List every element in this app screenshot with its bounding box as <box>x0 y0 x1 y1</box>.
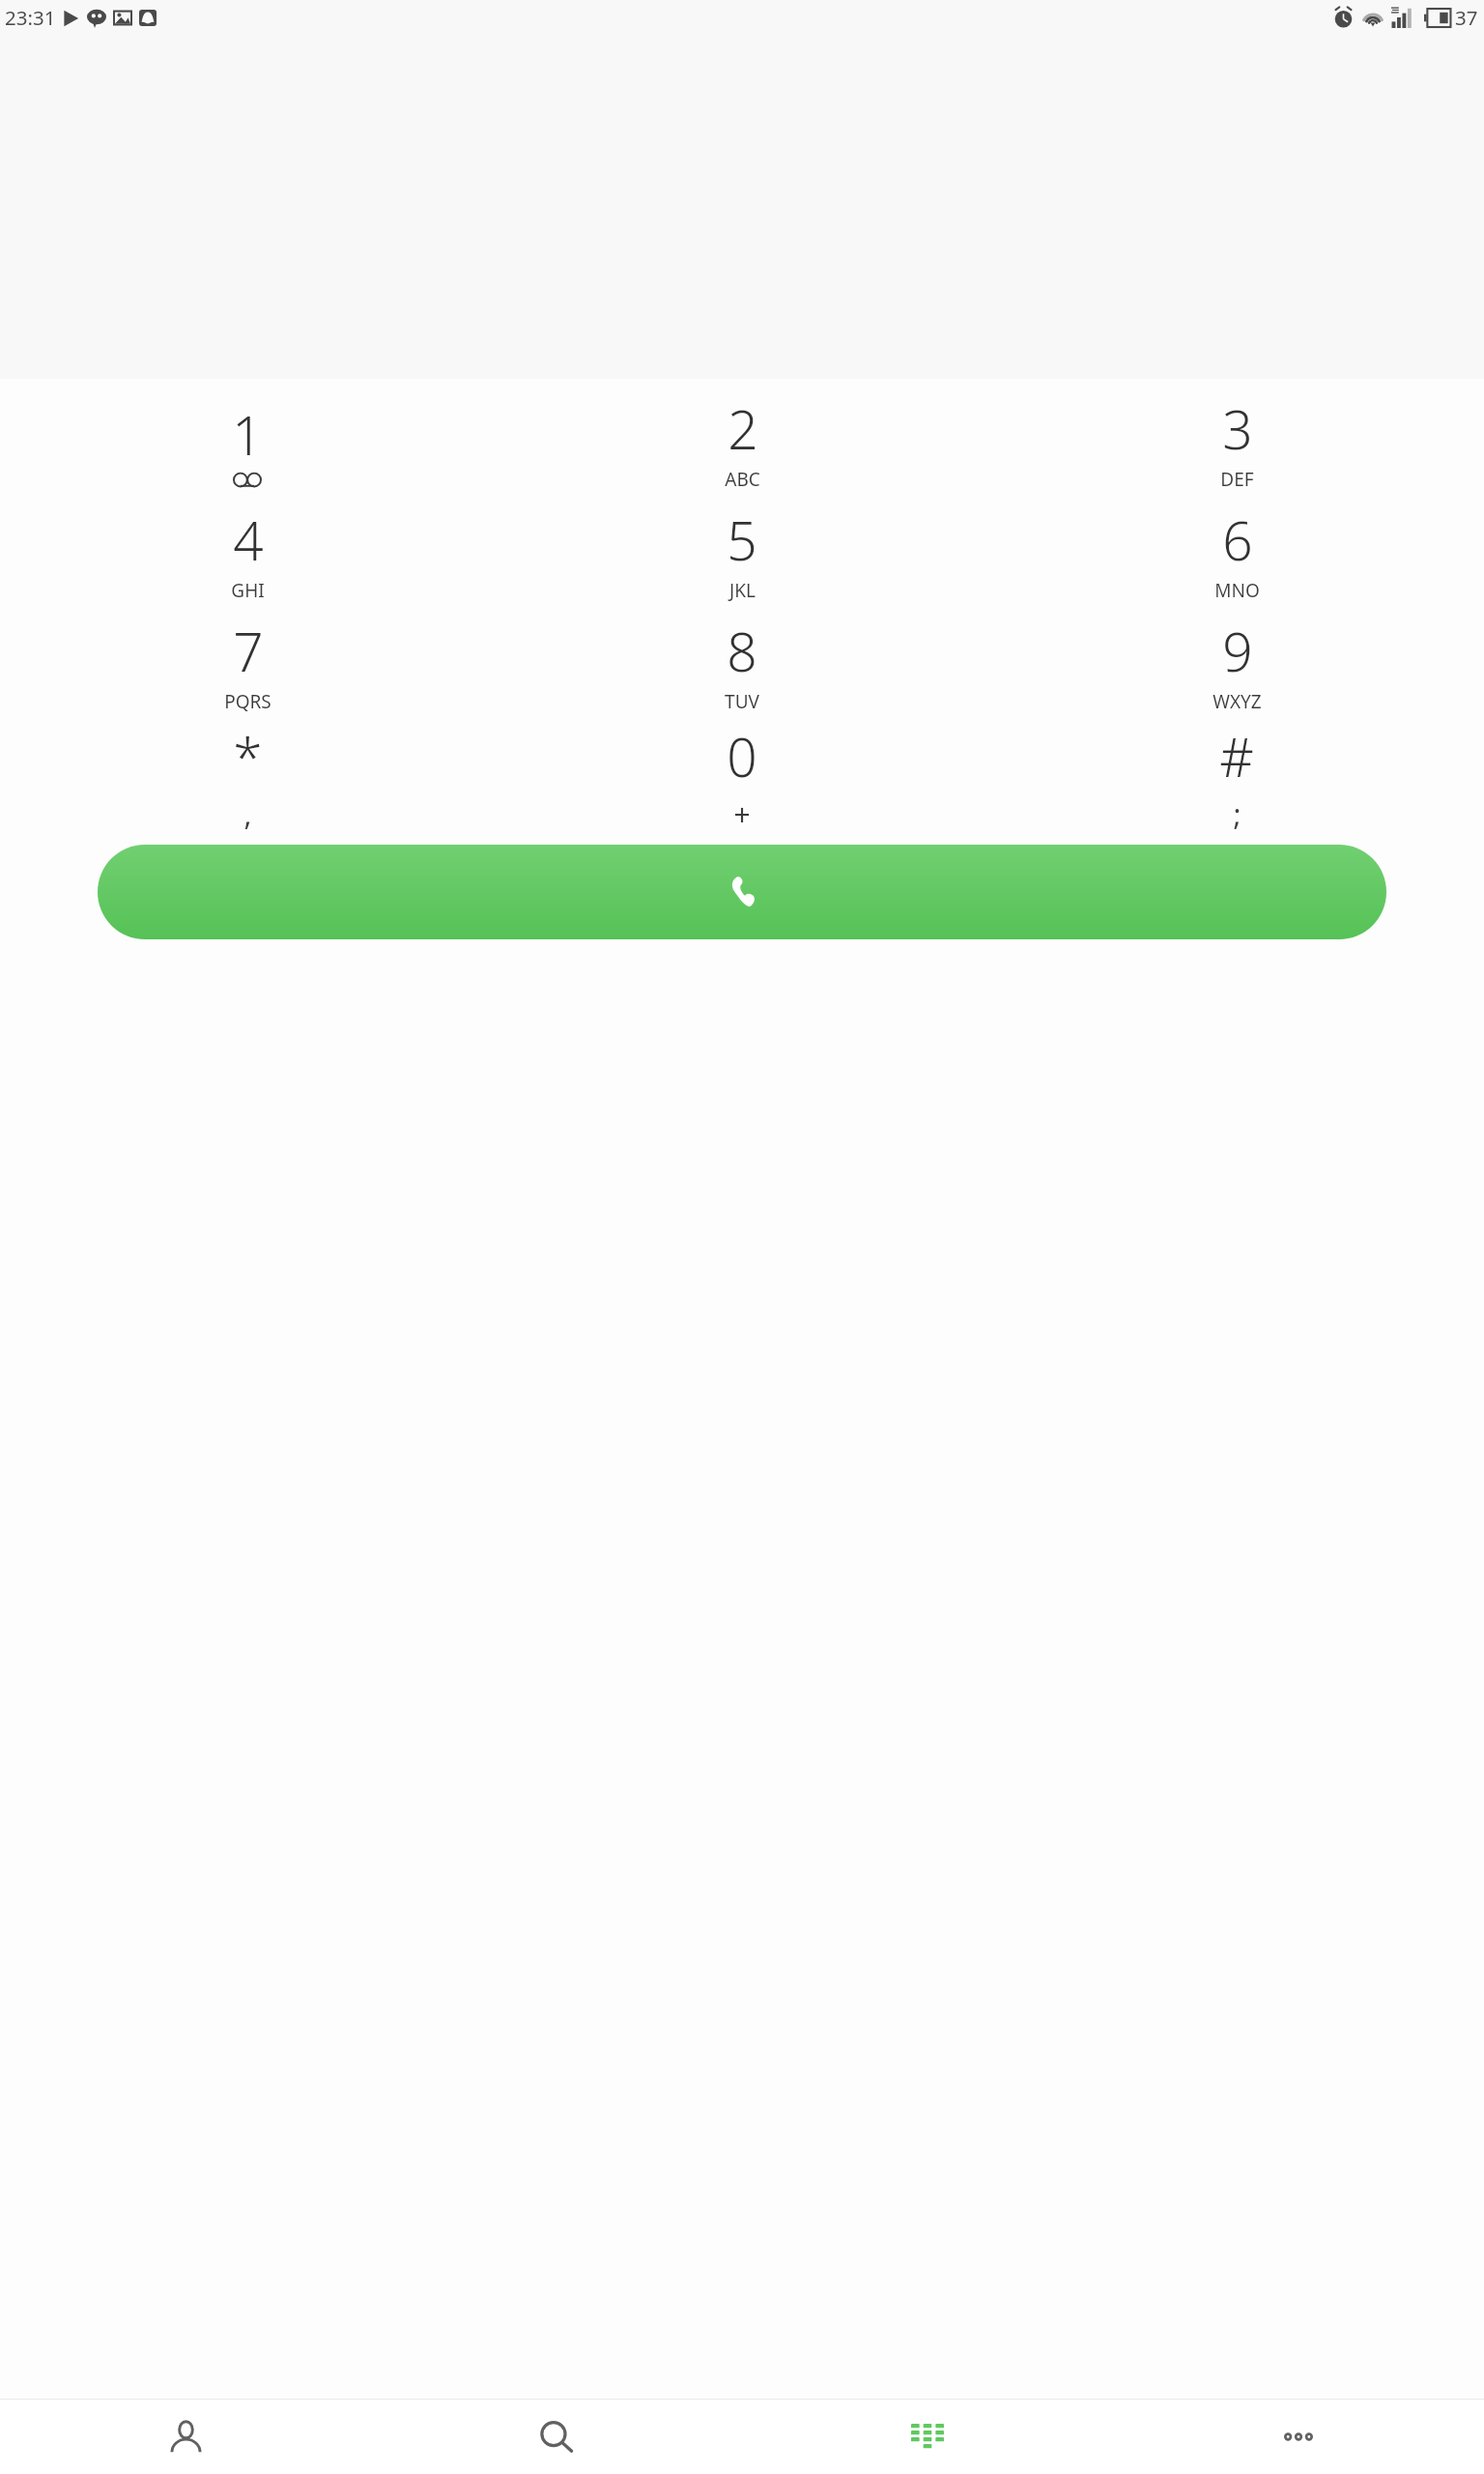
staticText: 8 <box>727 615 757 687</box>
button[interactable]: 4 <box>0 498 495 609</box>
staticText: ABC <box>725 467 760 492</box>
staticText: DEF <box>1220 467 1254 492</box>
staticText: 5 <box>727 503 757 576</box>
staticText: 4 <box>233 503 264 576</box>
staticText: TUV <box>725 689 759 714</box>
staticText: 2 <box>728 392 758 465</box>
staticText: 37 <box>1455 4 1478 31</box>
button[interactable]: Search <box>510 2400 603 2474</box>
staticText: JKL <box>729 578 756 603</box>
button[interactable]: * <box>0 720 495 831</box>
staticText: MNO <box>1214 578 1260 603</box>
button[interactable]: 9 <box>989 609 1484 720</box>
staticText: 0 <box>727 720 757 792</box>
staticText: 1 <box>232 398 263 471</box>
staticText: + <box>733 794 751 831</box>
staticText: 23:31 <box>5 4 56 31</box>
button[interactable]: 2 <box>495 387 989 498</box>
button[interactable]: # <box>989 720 1484 831</box>
button[interactable]: 0 <box>495 720 989 831</box>
button[interactable]: 1 <box>0 387 495 498</box>
staticText: 6 <box>1222 503 1253 576</box>
button[interactable]: 6 <box>989 498 1484 609</box>
button[interactable]: 3 <box>989 387 1484 498</box>
staticText: * <box>233 720 263 792</box>
button[interactable]: Call <box>98 845 1386 939</box>
staticText: ; <box>1233 794 1241 831</box>
button[interactable]: 5 <box>495 498 989 609</box>
staticText: PQRS <box>224 689 271 714</box>
staticText: , <box>243 794 252 831</box>
staticText: WXYZ <box>1213 689 1262 714</box>
button[interactable]: 8 <box>495 609 989 720</box>
button[interactable]: More options <box>1252 2400 1345 2474</box>
staticText: 9 <box>1222 615 1253 687</box>
staticText: 7 <box>233 615 264 687</box>
button[interactable]: 7 <box>0 609 495 720</box>
staticText: GHI <box>231 578 265 603</box>
staticText: # <box>1219 720 1254 792</box>
button[interactable]: Contacts <box>139 2400 232 2474</box>
staticText: 3 <box>1222 392 1253 465</box>
button[interactable]: Dialpad <box>881 2400 974 2474</box>
